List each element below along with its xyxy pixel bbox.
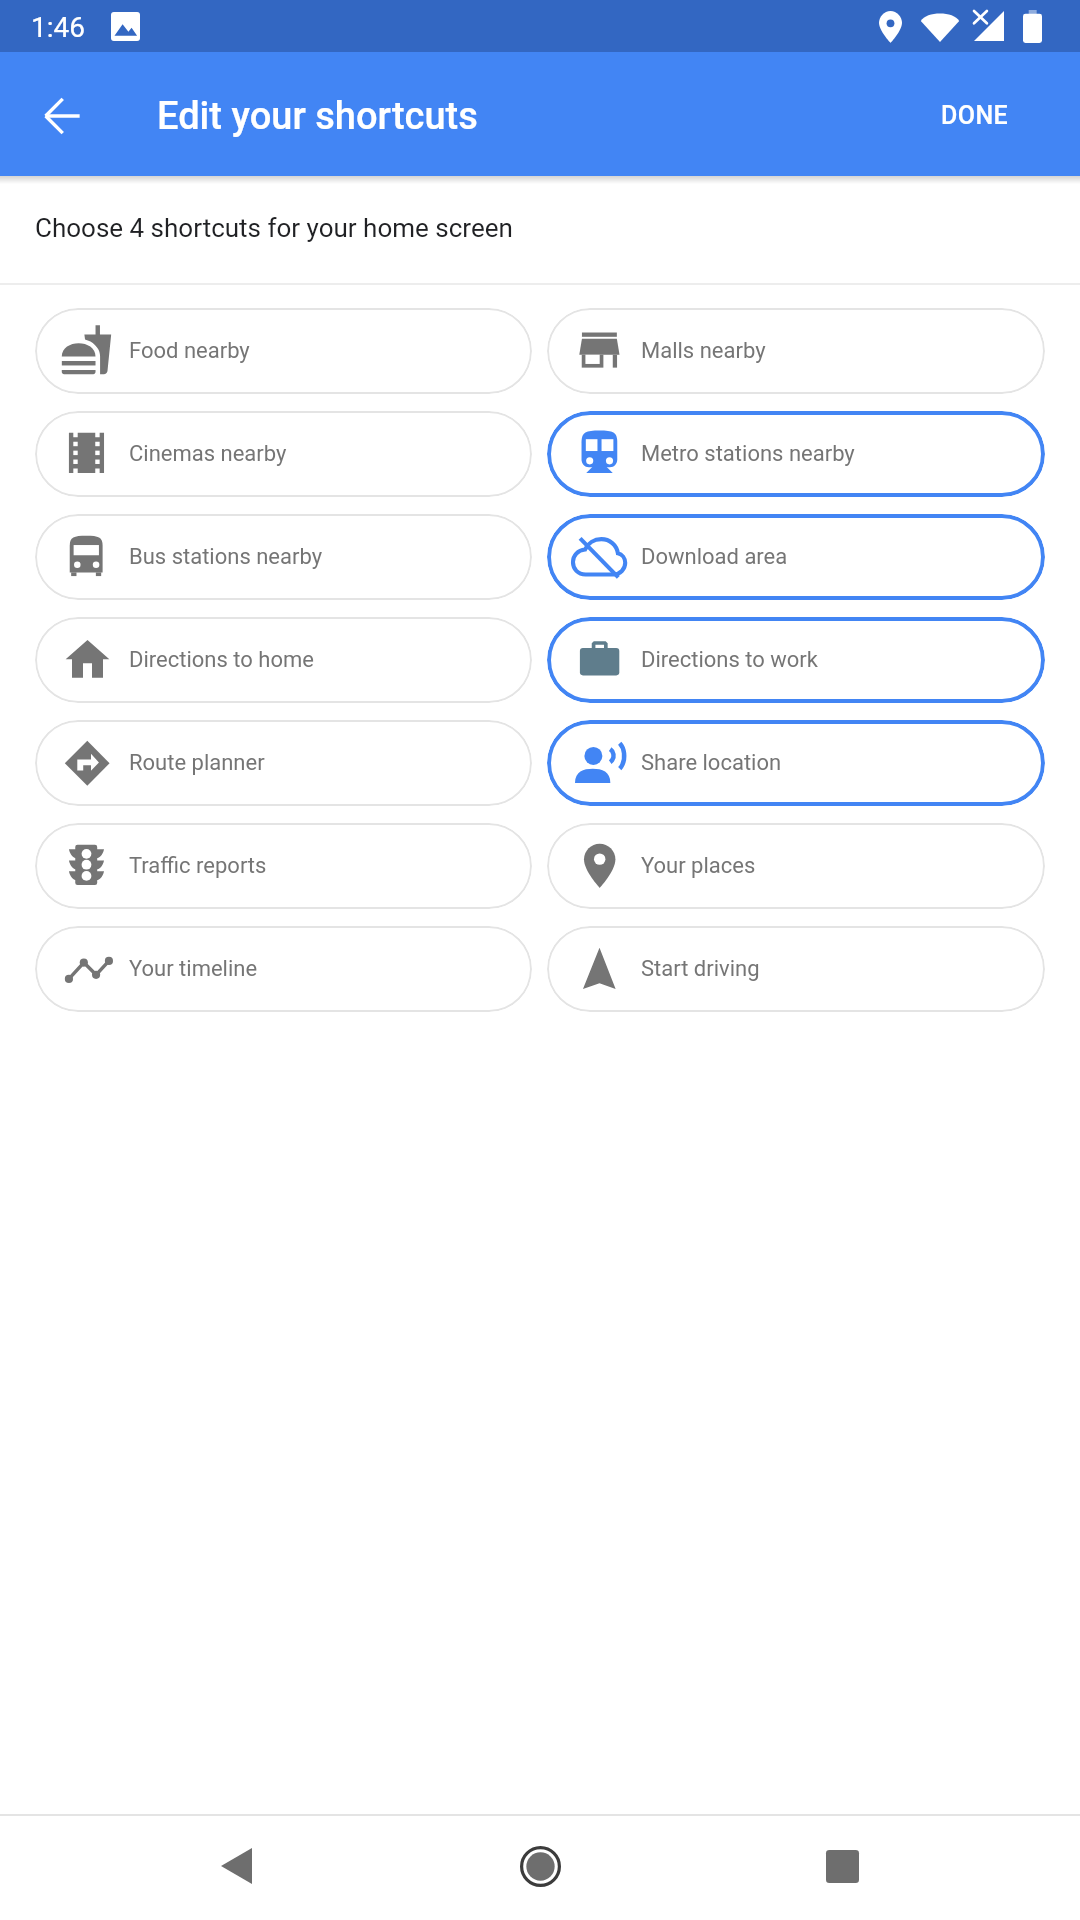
staticText: Malls nearby: [641, 338, 766, 364]
button[interactable]: Food nearby: [35, 308, 532, 394]
staticText: Directions to work: [641, 647, 818, 673]
staticText: Cinemas nearby: [129, 441, 287, 467]
staticText: Traffic reports: [129, 853, 267, 879]
staticText: Route planner: [129, 750, 265, 776]
button[interactable]: Your timeline: [35, 926, 532, 1012]
staticText: 1:46: [31, 11, 85, 44]
button[interactable]: Bus stations nearby: [35, 514, 532, 600]
staticText: Download area: [641, 544, 788, 570]
button[interactable]: Directions to home: [35, 617, 532, 703]
staticText: DONE: [941, 101, 1009, 130]
staticText: Start driving: [641, 956, 760, 982]
button[interactable]: Traffic reports: [35, 823, 532, 909]
button[interactable]: Directions to work: [547, 617, 1045, 703]
staticText: Bus stations nearby: [129, 544, 323, 570]
button[interactable]: DONE: [921, 85, 1029, 146]
staticText: Choose 4 shortcuts for your home screen: [35, 213, 513, 243]
staticText: Your timeline: [129, 956, 258, 982]
button[interactable]: Cinemas nearby: [35, 411, 532, 497]
button[interactable]: Metro stations nearby: [547, 411, 1045, 497]
button[interactable]: Home: [455, 1816, 625, 1920]
button[interactable]: Recent apps: [757, 1816, 927, 1920]
button[interactable]: Malls nearby: [547, 308, 1045, 394]
button[interactable]: Back: [151, 1816, 321, 1920]
button[interactable]: Navigate up: [18, 70, 106, 158]
staticText: Edit your shortcuts: [157, 94, 478, 139]
button[interactable]: Start driving: [547, 926, 1045, 1012]
staticText: Metro stations nearby: [641, 441, 855, 467]
button[interactable]: Route planner: [35, 720, 532, 806]
button[interactable]: Download area: [547, 514, 1045, 600]
staticText: Share location: [641, 750, 782, 776]
staticText: Your places: [641, 853, 756, 879]
staticText: Directions to home: [129, 647, 314, 673]
staticText: Food nearby: [129, 338, 250, 364]
button[interactable]: Your places: [547, 823, 1045, 909]
button[interactable]: Share location: [547, 720, 1045, 806]
